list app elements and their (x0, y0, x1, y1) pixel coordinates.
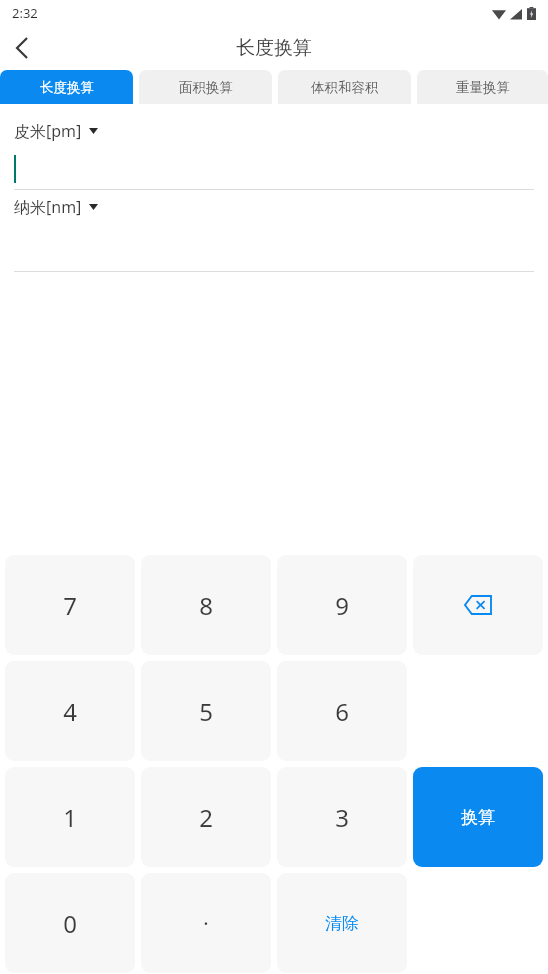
staticText: 2 (199, 801, 213, 834)
button[interactable]: 0 (5, 873, 135, 973)
staticText: 5 (199, 695, 213, 728)
button[interactable]: 8 (141, 555, 271, 655)
button[interactable]: 6 (277, 661, 407, 761)
button[interactable]: 清除 (277, 873, 407, 973)
button[interactable]: 体积和容积 (278, 70, 411, 104)
staticText: 4 (63, 695, 77, 728)
staticText: 1 (63, 801, 77, 834)
staticText: 2:32 (12, 4, 38, 22)
button[interactable]: 面积换算 (139, 70, 272, 104)
button[interactable]: 3 (277, 767, 407, 867)
button[interactable]: 4 (5, 661, 135, 761)
button[interactable]: 皮米[pm] (0, 114, 112, 148)
button[interactable]: 重量换算 (417, 70, 548, 104)
staticText: 重量换算 (456, 79, 510, 96)
button[interactable]: 7 (5, 555, 135, 655)
button[interactable]: 5 (141, 661, 271, 761)
button[interactable]: 长度换算 (0, 70, 133, 104)
button[interactable]: Back (0, 26, 44, 70)
staticText: 6 (335, 695, 349, 728)
button[interactable]: 纳米[nm] (0, 190, 112, 224)
staticText: 皮米[pm] (14, 120, 82, 142)
button[interactable]: · (141, 873, 271, 973)
button[interactable]: 换算 (413, 767, 543, 867)
staticText: 体积和容积 (311, 79, 379, 96)
staticText: 7 (63, 589, 77, 622)
staticText: 面积换算 (179, 79, 233, 96)
staticText: 长度换算 (40, 79, 94, 96)
staticText: 换算 (461, 807, 495, 828)
staticText: 0 (63, 907, 77, 940)
staticText: 清除 (325, 913, 359, 934)
button[interactable]: 2 (141, 767, 271, 867)
staticText: 3 (335, 801, 349, 834)
staticText: 9 (335, 589, 349, 622)
staticText: 长度换算 (236, 36, 312, 60)
staticText: · (203, 910, 209, 937)
button[interactable]: 1 (5, 767, 135, 867)
button[interactable]: 9 (277, 555, 407, 655)
staticText: 8 (199, 589, 213, 622)
staticText: 纳米[nm] (14, 196, 82, 218)
button[interactable]: Backspace (413, 555, 543, 655)
